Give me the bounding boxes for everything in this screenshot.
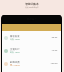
staticText: 轻松记录每笔收支 [25,6,39,8]
staticText: 智能记账本 [25,2,39,5]
staticText: -28.50 [51,36,58,39]
staticText: -12.00 [51,49,58,52]
staticText: 餐饮美食 [10,35,20,38]
staticText: 昨天 18:05 [10,51,20,54]
staticText: 今天 12:30 [10,38,20,41]
button[interactable]: 交通出行 [2,44,61,57]
button[interactable]: 购物消费 [2,57,61,70]
button[interactable]: 餐饮美食 [2,31,61,44]
staticText: 交通出行 [10,48,20,51]
staticText: -156.00 [50,62,58,65]
other: 交通出行 [4,49,8,53]
staticText: 周一 09:42 [10,64,20,67]
other: 餐饮美食 [4,36,8,40]
staticText: 购物消费 [10,61,20,64]
other: 购物消费 [4,62,8,66]
